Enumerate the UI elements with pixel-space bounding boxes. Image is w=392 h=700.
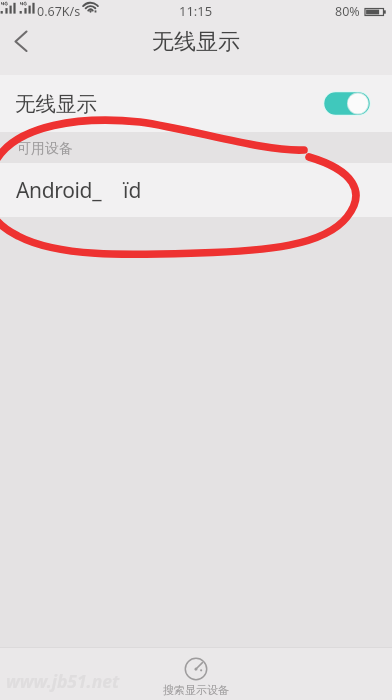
staticText: 可用设备 <box>17 140 73 158</box>
staticText: 11:15 <box>179 2 213 20</box>
staticText: ïd <box>123 176 142 205</box>
staticText: 0.67K/s <box>37 3 81 20</box>
button[interactable]: Android_ <box>0 163 392 217</box>
button[interactable]: 无线显示 <box>0 75 392 132</box>
staticText: 无线显示 <box>152 28 240 56</box>
button[interactable]: 返回 <box>0 22 44 75</box>
button[interactable]: 无线显示开关 <box>323 91 371 116</box>
staticText: www.jb51.net <box>6 669 120 693</box>
staticText: 80% <box>335 3 360 20</box>
staticText: 搜索显示设备 <box>163 683 229 697</box>
staticText: 无线显示 <box>15 91 97 117</box>
button[interactable]: 搜索显示设备 <box>163 657 229 697</box>
staticText: Android_ <box>16 176 102 205</box>
